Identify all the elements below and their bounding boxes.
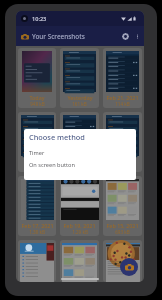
staticText: Yesterday bbox=[67, 94, 93, 101]
staticText: Feb 15, 2021 bbox=[106, 222, 139, 229]
staticText: Today bbox=[29, 94, 45, 101]
button[interactable]: Settings bbox=[118, 29, 132, 43]
button[interactable]: New screenshot bbox=[120, 258, 138, 276]
staticText: 1.29 kB bbox=[72, 229, 88, 235]
staticText: Your Screenshots bbox=[32, 32, 85, 41]
staticText: On screen button bbox=[29, 161, 75, 169]
button[interactable]: Timer bbox=[24, 147, 136, 159]
staticText: 693 kB bbox=[115, 229, 130, 235]
button[interactable]: Yesterday bbox=[60, 48, 99, 108]
button[interactable]: Feb 21, 2021 bbox=[103, 48, 142, 108]
button[interactable]: More options bbox=[132, 31, 143, 42]
button[interactable] bbox=[60, 112, 99, 172]
staticText: Feb 21, 2021 bbox=[106, 94, 139, 101]
staticText: 114 kB bbox=[115, 101, 130, 107]
button[interactable] bbox=[60, 240, 99, 282]
button[interactable] bbox=[103, 112, 142, 172]
button[interactable] bbox=[18, 240, 56, 282]
button[interactable]: Feb 15, 2021 bbox=[103, 176, 142, 236]
staticText: Feb 19, 2021 bbox=[63, 222, 96, 229]
staticText: 1.38 kB bbox=[29, 229, 45, 235]
button[interactable] bbox=[18, 112, 56, 172]
staticText: 948 kB bbox=[30, 101, 45, 107]
staticText: Timer bbox=[29, 149, 45, 157]
staticText: 161 kB bbox=[72, 101, 87, 107]
button[interactable] bbox=[103, 240, 142, 282]
staticText: Choose method bbox=[29, 132, 85, 142]
button[interactable]: On screen button bbox=[24, 159, 136, 171]
button[interactable]: Feb 17, 2021 bbox=[18, 176, 56, 236]
staticText: 10:23 bbox=[32, 15, 47, 23]
staticText: Feb 17, 2021 bbox=[21, 222, 54, 229]
button[interactable]: App bbox=[18, 30, 31, 43]
button[interactable]: Feb 19, 2021 bbox=[60, 176, 99, 236]
button[interactable]: Today bbox=[18, 48, 56, 108]
